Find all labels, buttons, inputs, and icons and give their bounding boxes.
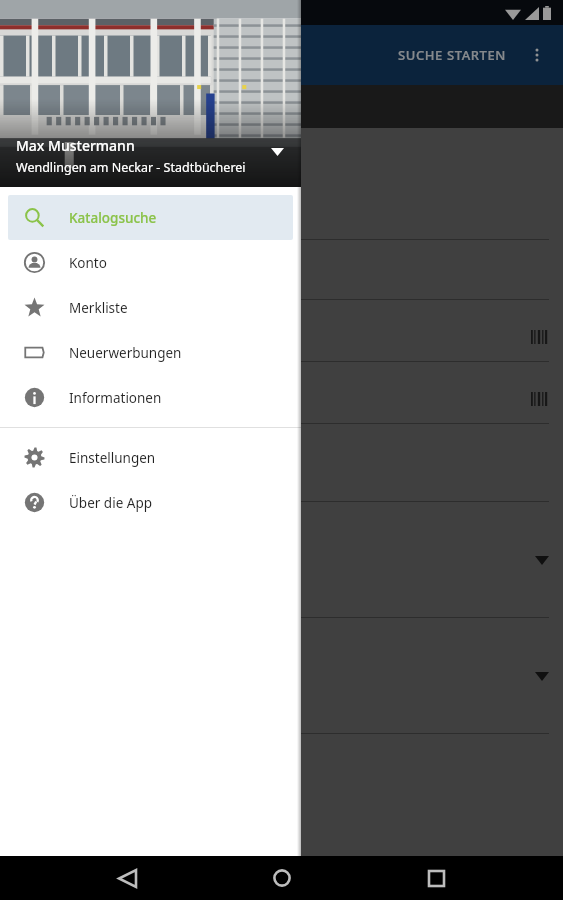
button[interactable]: [14, 618, 549, 734]
staticText: Stadtbücherei: [16, 60, 95, 76]
staticText: Konto: [69, 254, 107, 272]
button[interactable]: Back: [99, 856, 155, 900]
button[interactable]: [14, 424, 549, 502]
button[interactable]: [14, 240, 549, 300]
staticText: Über die App: [69, 494, 153, 512]
staticText: Neuerwerbungen: [69, 344, 182, 362]
button[interactable]: [14, 300, 549, 362]
button[interactable]: Über die App: [8, 480, 293, 525]
button[interactable]: [14, 362, 549, 424]
staticText: SUCHE STARTEN: [398, 46, 507, 64]
button[interactable]: Katalogsuche: [8, 195, 293, 240]
button[interactable]: Home: [254, 856, 310, 900]
button[interactable]: Recent apps: [408, 856, 464, 900]
staticText: Katalogsuche: [69, 209, 157, 227]
button[interactable]: Neuerwerbungen: [8, 330, 293, 375]
button[interactable]: Max Mustermann: [0, 136, 301, 187]
staticText: Einstellungen: [69, 449, 156, 467]
staticText: Max Mustermann: [16, 136, 135, 155]
button[interactable]: [14, 128, 549, 240]
button[interactable]: SUCHE STARTEN: [388, 36, 517, 74]
staticText: Wendlingen am Neckar - Stadtbücherei: [16, 159, 246, 176]
button[interactable]: [14, 502, 549, 618]
button[interactable]: Einstellungen: [8, 435, 293, 480]
staticText: Wendlingen: [16, 34, 120, 59]
button[interactable]: Konto: [8, 240, 293, 285]
button[interactable]: Informationen: [8, 375, 293, 420]
other: Switch account: [265, 140, 289, 164]
staticText: Merkliste: [69, 299, 128, 317]
staticText: Informationen: [69, 389, 162, 407]
button[interactable]: Merkliste: [8, 285, 293, 330]
button[interactable]: More options: [517, 35, 557, 75]
